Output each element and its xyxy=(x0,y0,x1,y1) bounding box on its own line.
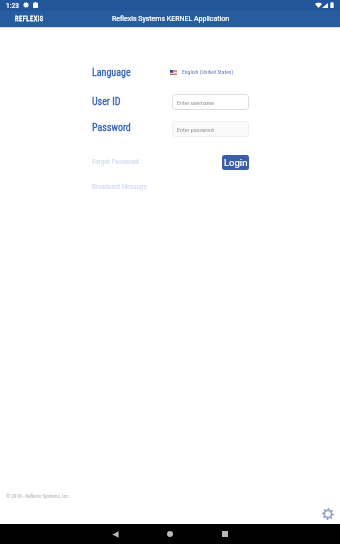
staticText: Enter username xyxy=(177,99,215,106)
button[interactable]: Back xyxy=(105,524,126,544)
button[interactable]: Enter password xyxy=(172,121,249,137)
staticText: Language xyxy=(92,67,131,79)
staticText: © 2018 - Reflexis Systems, Inc. xyxy=(6,493,70,499)
button[interactable]: Recent apps xyxy=(214,524,235,544)
staticText: Broadcast Message xyxy=(92,183,147,191)
button[interactable]: Broadcast Message xyxy=(92,182,147,192)
staticText: Password xyxy=(92,122,131,134)
button[interactable]: Login xyxy=(222,155,249,170)
button[interactable]: Forgot Password xyxy=(92,157,139,167)
button[interactable]: Settings xyxy=(321,507,335,521)
staticText: Reflexis Systems KERNEL Application xyxy=(112,15,230,23)
staticText: 1:23 xyxy=(6,1,19,10)
staticText: English (United States) xyxy=(182,69,234,76)
button[interactable]: Home xyxy=(160,524,180,544)
button[interactable]: English (United States) xyxy=(170,69,234,76)
staticText: Enter password xyxy=(177,126,214,133)
staticText: User ID xyxy=(92,96,121,108)
staticText: Forgot Password xyxy=(92,158,139,166)
staticText: REFLEXIS xyxy=(15,15,44,23)
staticText: Login xyxy=(224,157,248,168)
button[interactable]: Enter username xyxy=(172,94,249,110)
